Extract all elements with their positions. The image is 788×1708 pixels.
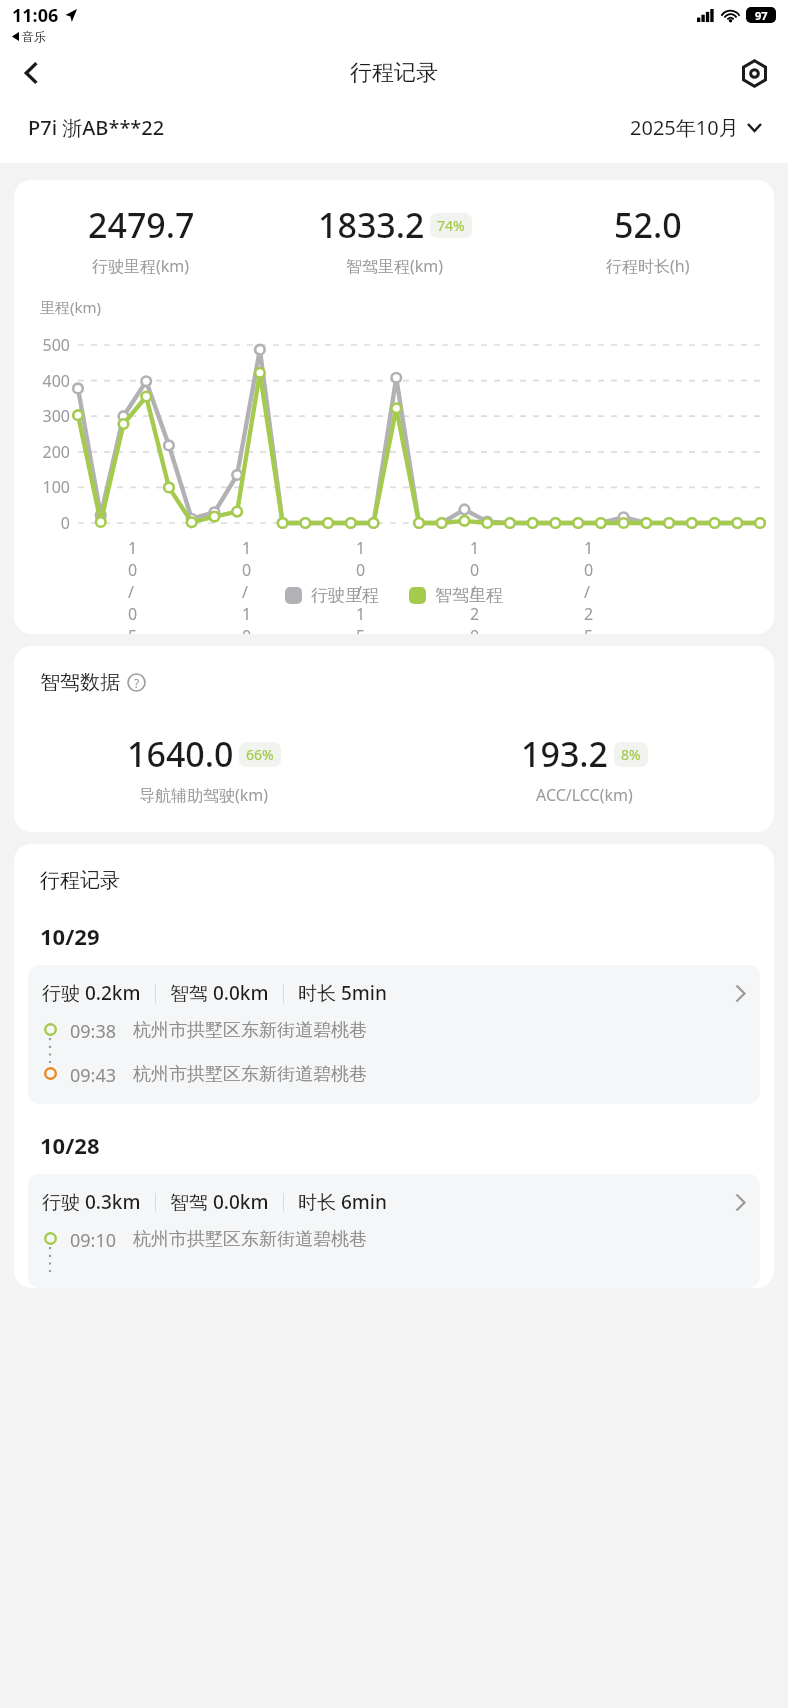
staticText: 智驾里程(km) xyxy=(346,255,444,277)
button[interactable]: Help xyxy=(127,673,146,692)
staticText: 里程(km) xyxy=(40,297,102,317)
staticText: 1833.2 xyxy=(318,202,425,248)
staticText: 09:10 xyxy=(70,1228,117,1253)
staticText: 智驾 0.0km xyxy=(170,980,269,1006)
staticText: 10/28 xyxy=(40,1130,100,1160)
staticText: 时长 6min xyxy=(298,1189,387,1215)
staticText: 行驶里程 xyxy=(311,585,379,606)
staticText: 8% xyxy=(621,745,641,764)
staticText: 杭州市拱墅区东新街道碧桃巷 xyxy=(133,1019,367,1042)
button[interactable]: Settings xyxy=(730,49,778,97)
staticText: 杭州市拱墅区东新街道碧桃巷 xyxy=(133,1228,367,1251)
staticText: 时长 5min xyxy=(298,980,387,1006)
button[interactable]: 行驶里程 xyxy=(285,585,379,606)
staticText: 11:06 xyxy=(12,3,59,28)
staticText: 193.2 xyxy=(521,731,609,777)
staticText: 500 xyxy=(14,334,70,356)
staticText: 1640.0 xyxy=(127,731,234,777)
staticText: 智驾 0.0km xyxy=(170,1189,269,1215)
staticText: 66% xyxy=(246,745,274,764)
staticText: ACC/LCC(km) xyxy=(536,784,633,806)
staticText: 200 xyxy=(14,441,70,463)
staticText: 2479.7 xyxy=(88,202,195,248)
staticText: 400 xyxy=(14,370,70,392)
staticText: 52.0 xyxy=(614,202,682,248)
staticText: 智驾里程 xyxy=(435,585,503,606)
staticText: 300 xyxy=(14,405,70,427)
staticText: 行程记录 xyxy=(40,868,120,893)
staticText: 74% xyxy=(437,216,465,235)
staticText: 10/29 xyxy=(40,921,100,951)
button[interactable]: Back xyxy=(8,49,56,97)
button[interactable]: 2025年10月 xyxy=(630,114,762,141)
staticText: 09:43 xyxy=(70,1063,117,1088)
staticText: 0 xyxy=(14,512,70,534)
button[interactable]: 智驾里程 xyxy=(409,585,503,606)
staticText: 音乐 xyxy=(22,29,46,44)
staticText: 100 xyxy=(14,476,70,498)
staticText: 智驾数据 xyxy=(40,670,120,695)
staticText: 行程记录 xyxy=(350,59,438,87)
staticText: 2025年10月 xyxy=(630,114,739,141)
staticText: 导航辅助驾驶(km) xyxy=(139,784,269,806)
button[interactable]: 行驶 0.2km xyxy=(28,965,760,1104)
staticText: 行驶 0.2km xyxy=(42,980,141,1006)
staticText: 杭州市拱墅区东新街道碧桃巷 xyxy=(133,1063,367,1086)
staticText: 行驶 0.3km xyxy=(42,1189,141,1215)
staticText: 行驶里程(km) xyxy=(92,255,190,277)
staticText: 97 xyxy=(755,8,768,23)
staticText: 09:38 xyxy=(70,1019,117,1044)
staticText: 行程时长(h) xyxy=(606,255,690,277)
staticText: P7i 浙AB***22 xyxy=(28,114,165,141)
button[interactable]: 行驶 0.3km xyxy=(28,1174,760,1288)
staticText: ? xyxy=(134,675,140,691)
